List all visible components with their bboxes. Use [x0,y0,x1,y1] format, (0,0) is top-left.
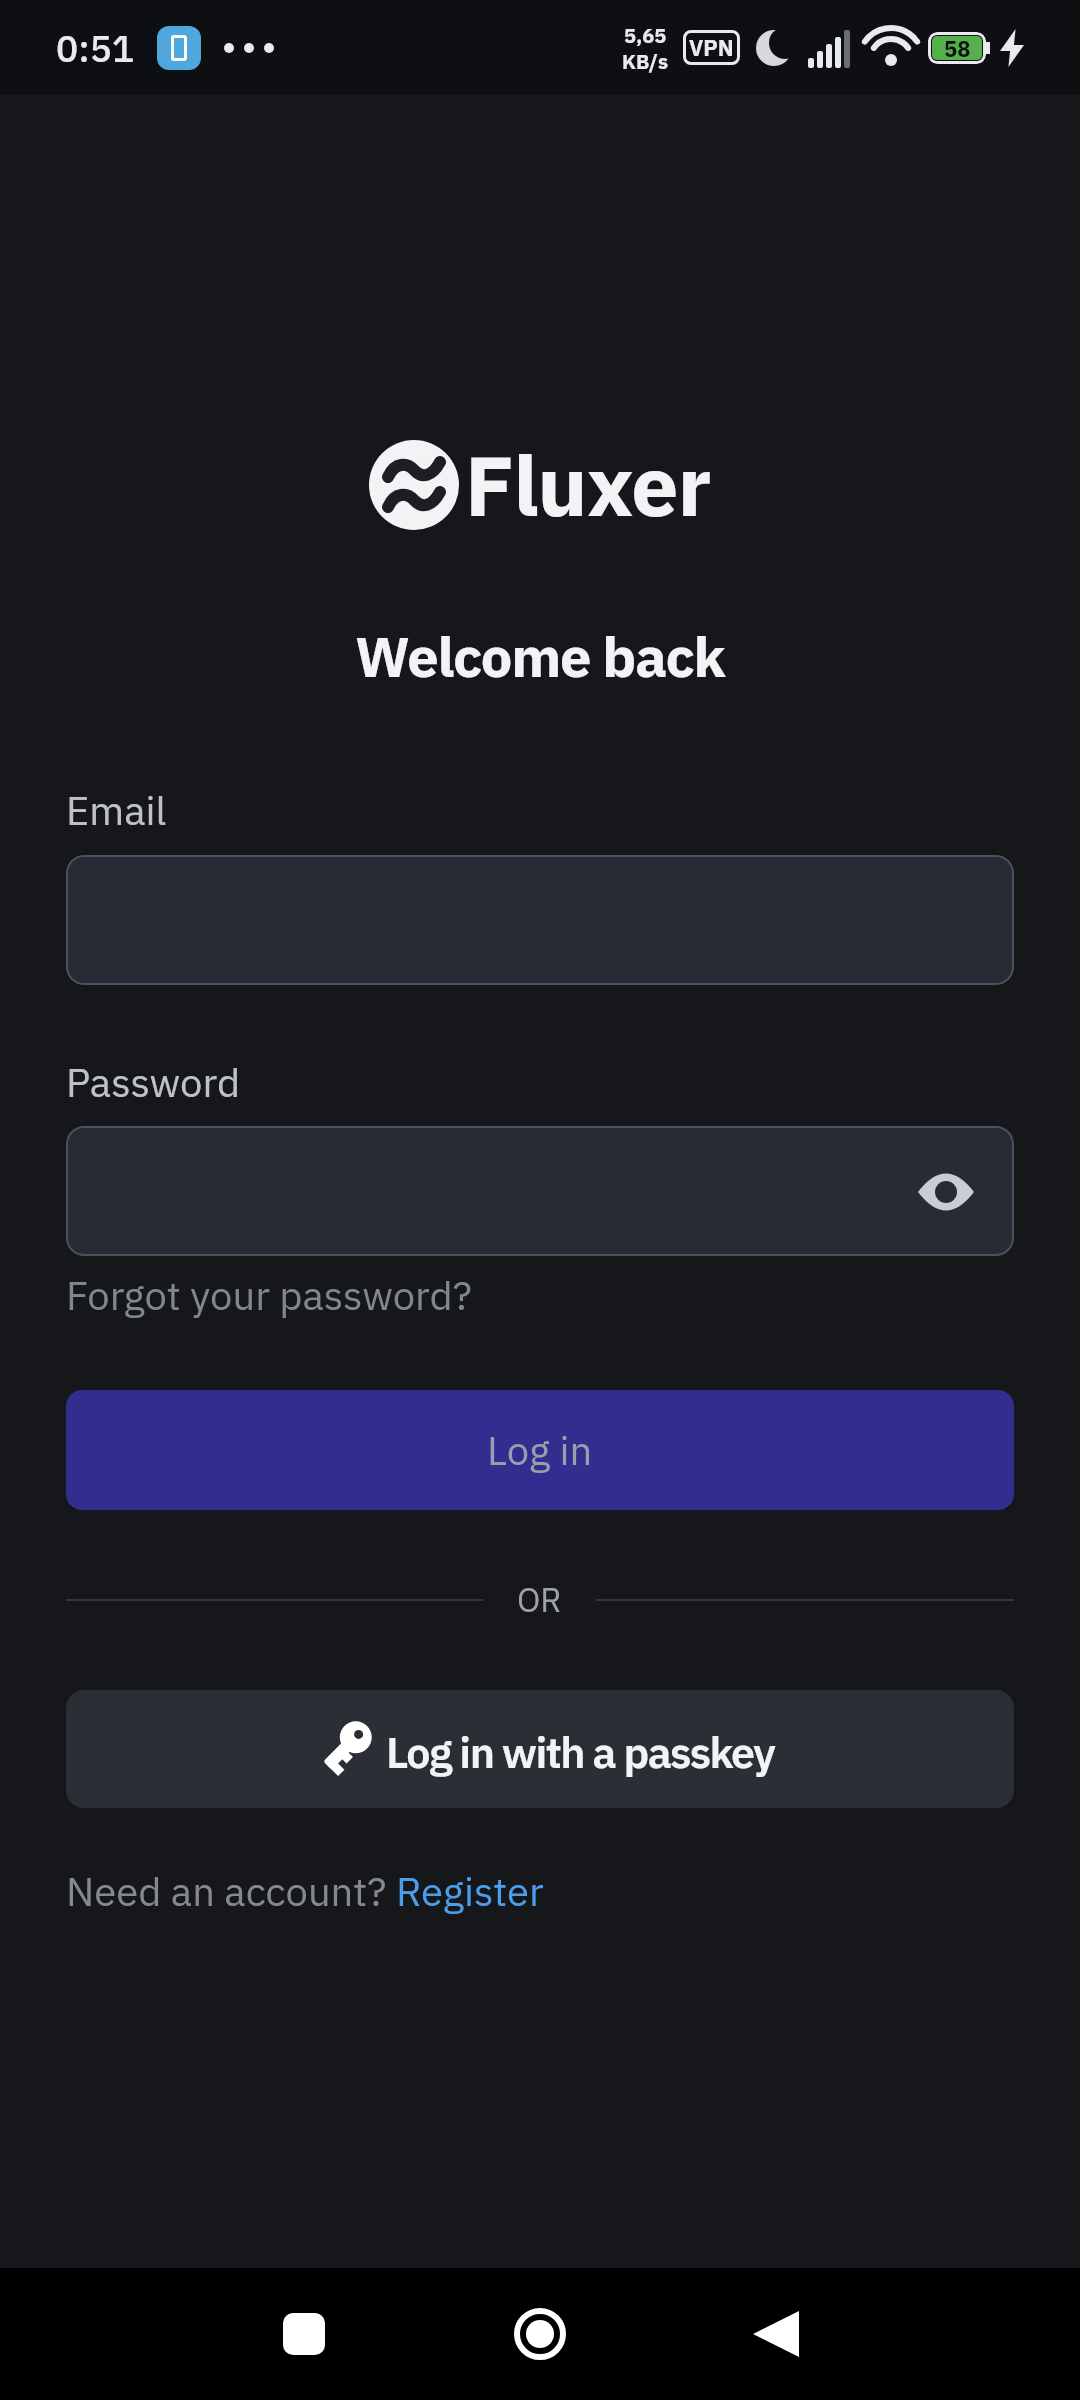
staticText: KB/s [622,48,669,74]
button[interactable]: Forgot your password? [66,1269,472,1321]
staticText: Welcome back [66,620,1014,693]
staticText: Email [66,784,167,836]
staticText: VPN [689,33,734,62]
staticText: 58 [944,34,971,63]
staticText: 5,65 [624,22,667,48]
button[interactable]: Log in [66,1390,1014,1510]
button[interactable] [229,2268,379,2400]
button[interactable] [66,1126,1014,1256]
staticText: Password [66,1056,241,1108]
staticText: Log in [487,1424,593,1476]
staticText: OR [517,1578,562,1621]
staticText: Log in with a passkey [386,1724,775,1780]
button[interactable] [465,2268,615,2400]
staticText: 0:51 [56,24,135,72]
button[interactable]: Need an account? Register [66,1865,544,1917]
button[interactable]: Log in with a passkey [66,1690,1014,1808]
button[interactable] [66,855,1014,985]
staticText: Fluxer [465,430,711,539]
button[interactable] [701,2268,851,2400]
